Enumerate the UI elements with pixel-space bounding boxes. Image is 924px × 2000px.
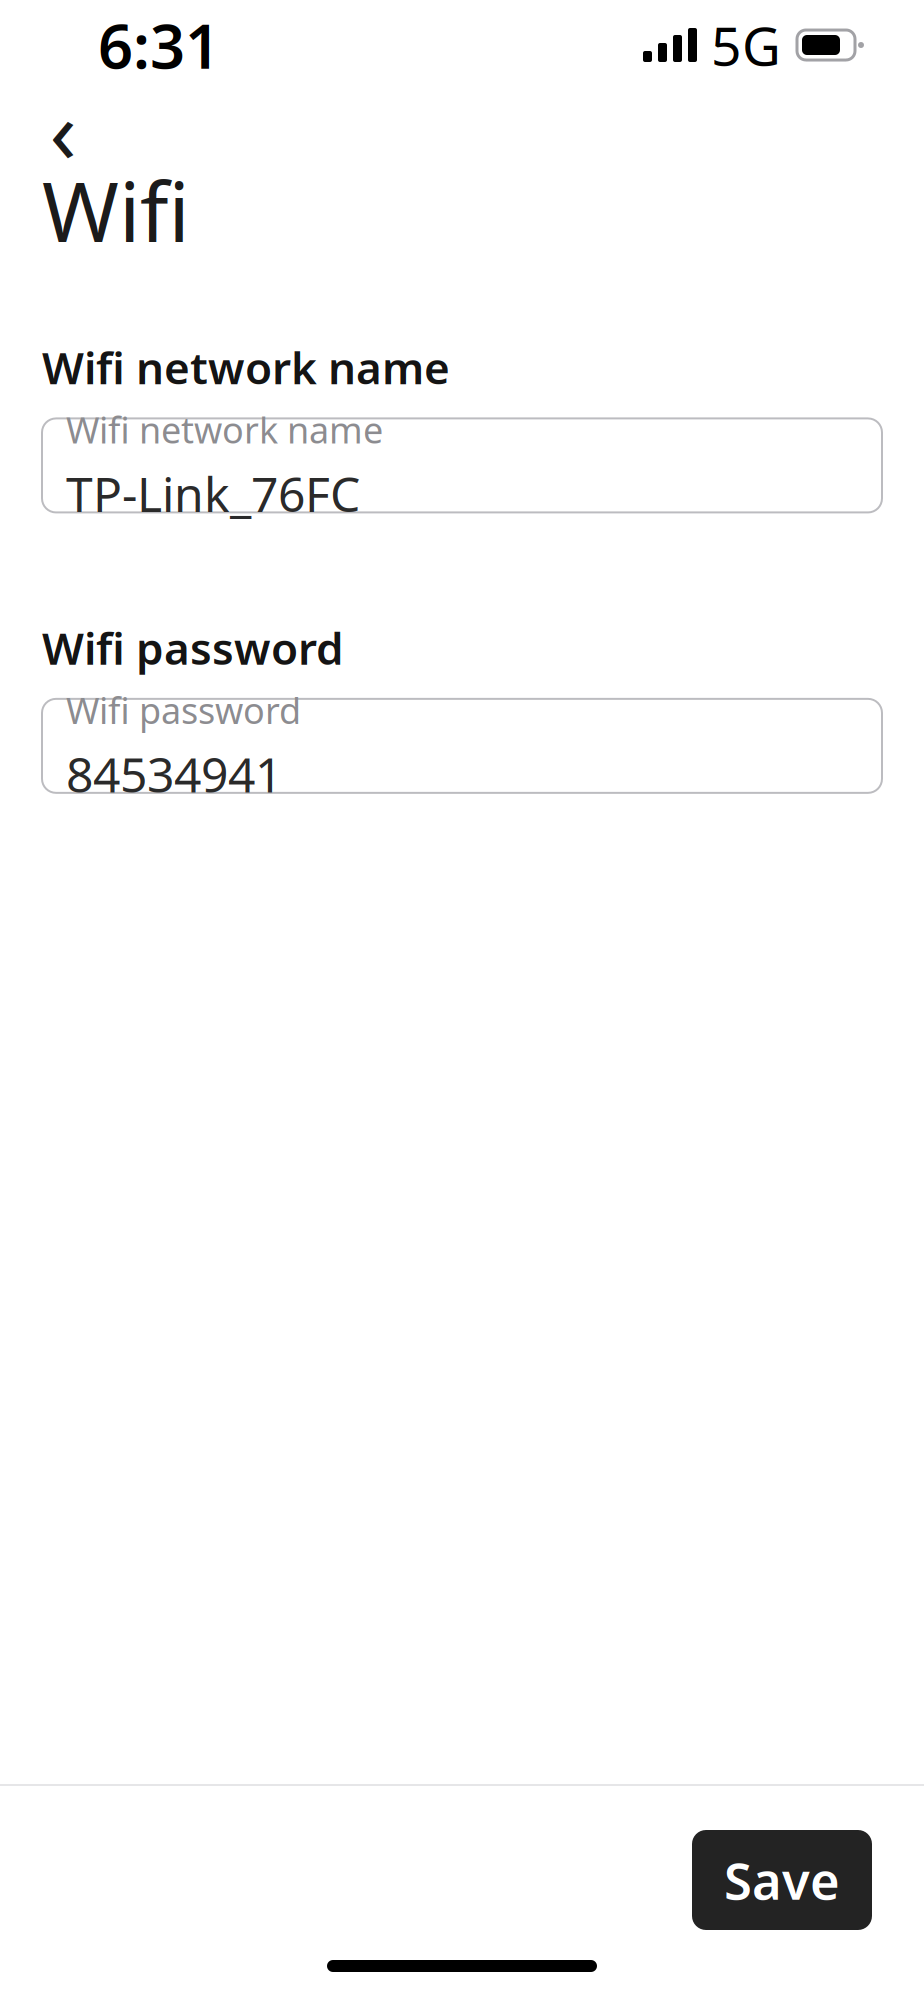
button[interactable]: Wifi password (42, 699, 882, 793)
staticText: 84534941 (66, 742, 282, 806)
button[interactable]: Back (28, 94, 98, 164)
staticText: Wifi password (66, 686, 301, 734)
staticText: Wifi network name (42, 338, 450, 396)
button[interactable]: Save (692, 1830, 872, 1930)
button[interactable]: Wifi network name (42, 418, 882, 512)
staticText: ‹ (49, 71, 76, 187)
staticText: Wifi network name (66, 406, 383, 453)
staticText: Save (724, 1846, 840, 1914)
staticText: Wifi password (42, 618, 344, 677)
staticText: TP-Link_76FC (66, 461, 360, 525)
staticText: Wifi (42, 155, 190, 265)
staticText: 6:31 (98, 4, 220, 86)
staticText: 5G (711, 10, 781, 80)
